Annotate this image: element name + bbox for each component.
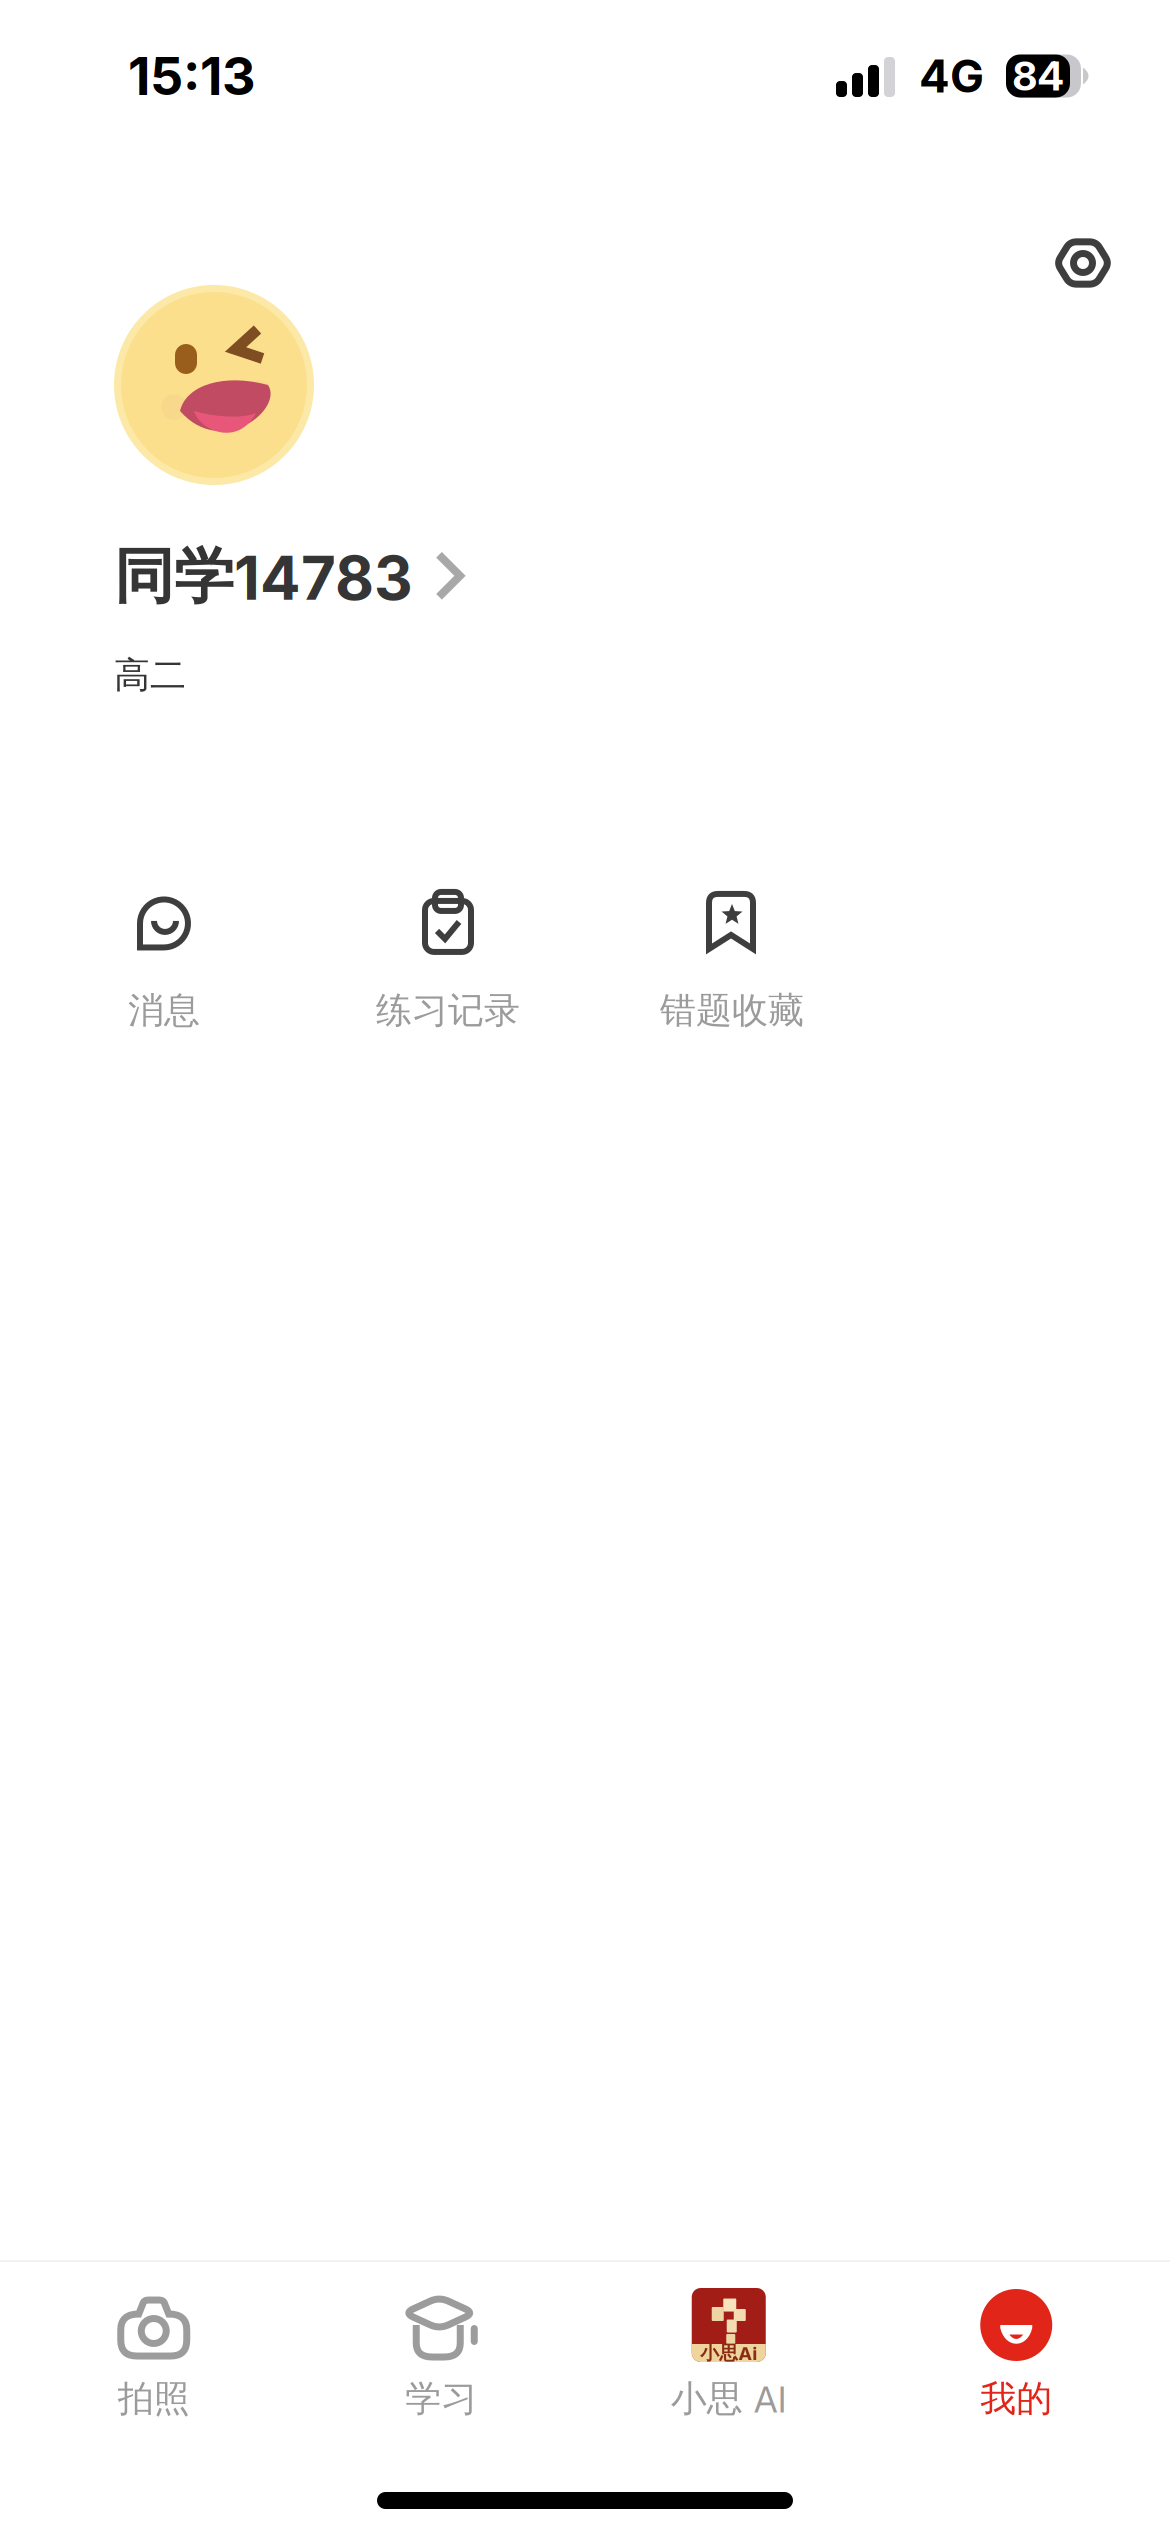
staticText: 15:13: [128, 44, 256, 107]
button[interactable]: 同学14783: [114, 539, 462, 615]
button[interactable]: Settings: [1048, 230, 1118, 296]
button[interactable]: 学习: [297, 2288, 585, 2421]
button[interactable]: 拍照: [10, 2288, 297, 2421]
button[interactable]: 我的: [872, 2288, 1160, 2421]
staticText: 4G: [919, 49, 984, 103]
staticText: 错题收藏: [660, 988, 804, 1033]
button[interactable]: 小思Ai: [585, 2288, 872, 2421]
staticText: 高二: [114, 653, 186, 698]
staticText: 我的: [980, 2376, 1052, 2421]
staticText: 小思Ai: [700, 2341, 757, 2365]
staticText: 学习: [405, 2376, 477, 2421]
staticText: 小思 AI: [671, 2376, 787, 2421]
staticText: 消息: [128, 988, 200, 1033]
staticText: 练习记录: [376, 988, 520, 1033]
button[interactable]: 练习记录: [306, 895, 590, 1033]
staticText: 拍照: [118, 2376, 190, 2421]
staticText: 84: [1012, 52, 1063, 100]
staticText: 同学14783: [114, 539, 413, 615]
button[interactable]: 消息: [22, 895, 306, 1033]
button[interactable]: 错题收藏: [590, 895, 874, 1033]
